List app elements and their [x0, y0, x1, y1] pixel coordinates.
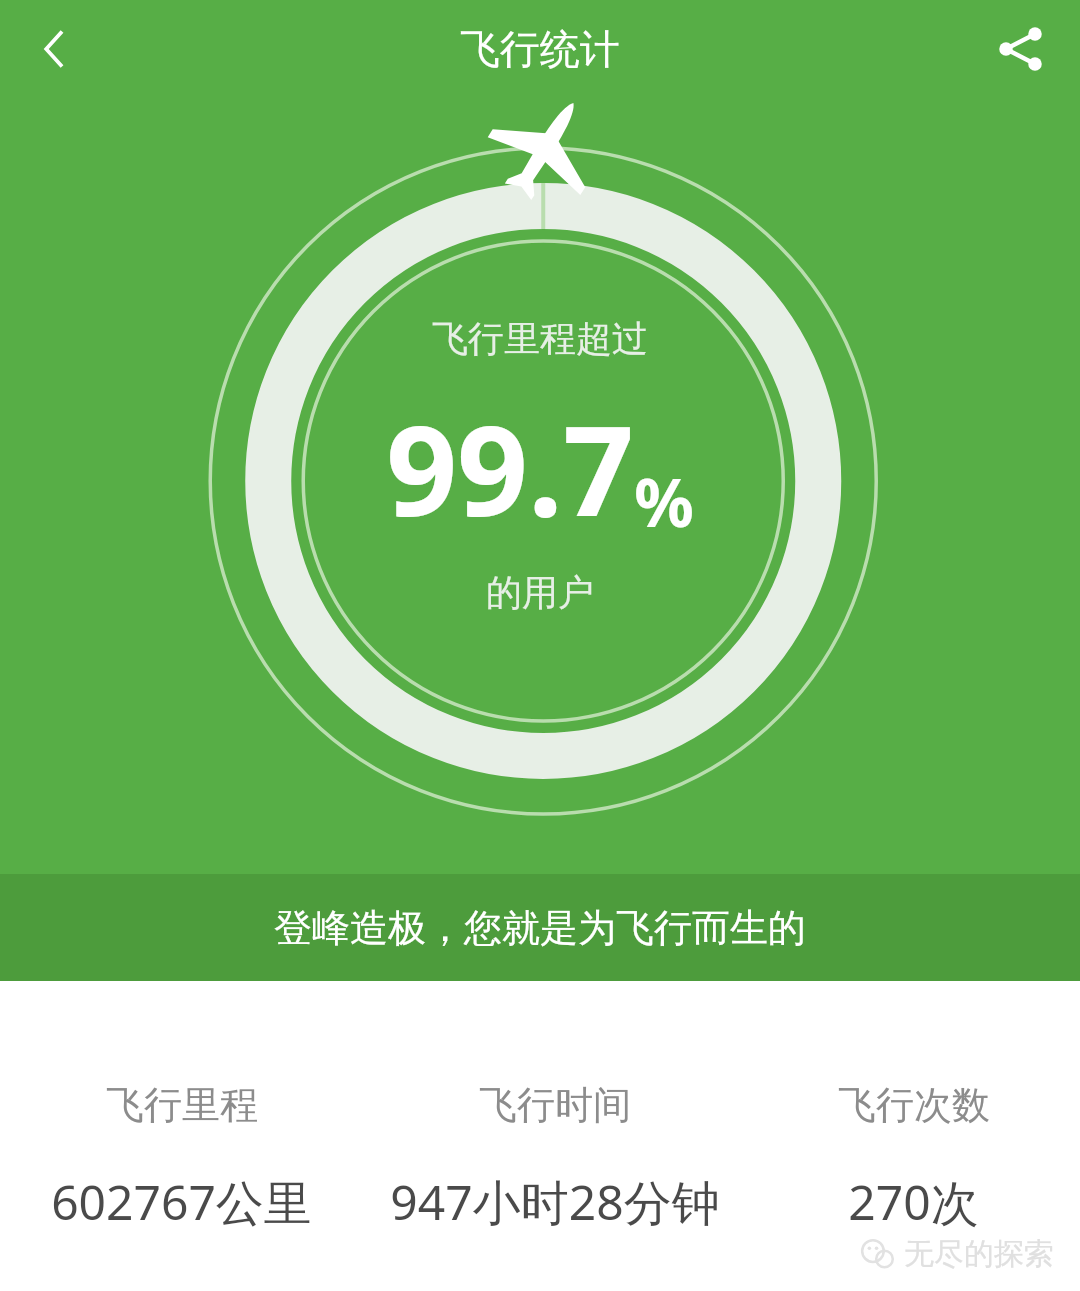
- button[interactable]: Back: [0, 0, 110, 98]
- staticText: 602767公里: [51, 1169, 312, 1235]
- button[interactable]: Share: [960, 0, 1080, 98]
- staticText: 947小时28分钟: [390, 1169, 720, 1235]
- button[interactable]: 飞行时间: [363, 1081, 747, 1235]
- staticText: %: [634, 456, 694, 546]
- staticText: 飞行里程: [106, 1081, 258, 1129]
- staticText: 飞行里程超过: [432, 316, 648, 361]
- staticText: 飞行时间: [479, 1081, 631, 1129]
- button[interactable]: 飞行次数: [747, 1081, 1080, 1235]
- staticText: 飞行统计: [460, 24, 620, 74]
- staticText: 270次: [848, 1169, 979, 1235]
- staticText: 登峰造极，您就是为飞行而生的: [274, 904, 806, 952]
- staticText: 99.7: [386, 383, 634, 552]
- staticText: 飞行次数: [838, 1081, 990, 1129]
- staticText: 无尽的探索: [904, 1235, 1054, 1273]
- button[interactable]: 飞行里程: [0, 1081, 363, 1235]
- staticText: 的用户: [486, 570, 594, 615]
